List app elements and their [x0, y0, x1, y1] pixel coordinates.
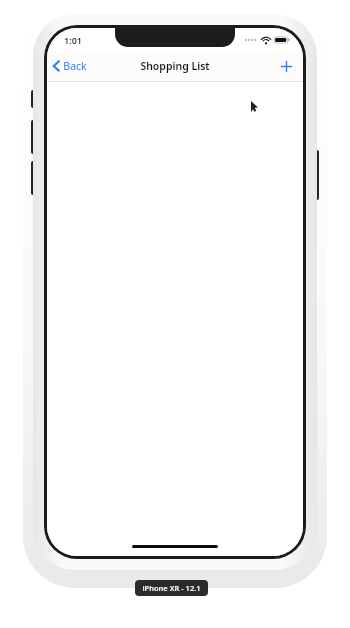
staticText: iPhone XR - 12.1 [142, 583, 201, 593]
button[interactable]: Back [47, 55, 97, 77]
staticText: 1:01 [64, 34, 82, 46]
button[interactable]: Add item [270, 55, 303, 78]
staticText: Shopping List [140, 59, 210, 73]
staticText: Back [63, 59, 87, 73]
